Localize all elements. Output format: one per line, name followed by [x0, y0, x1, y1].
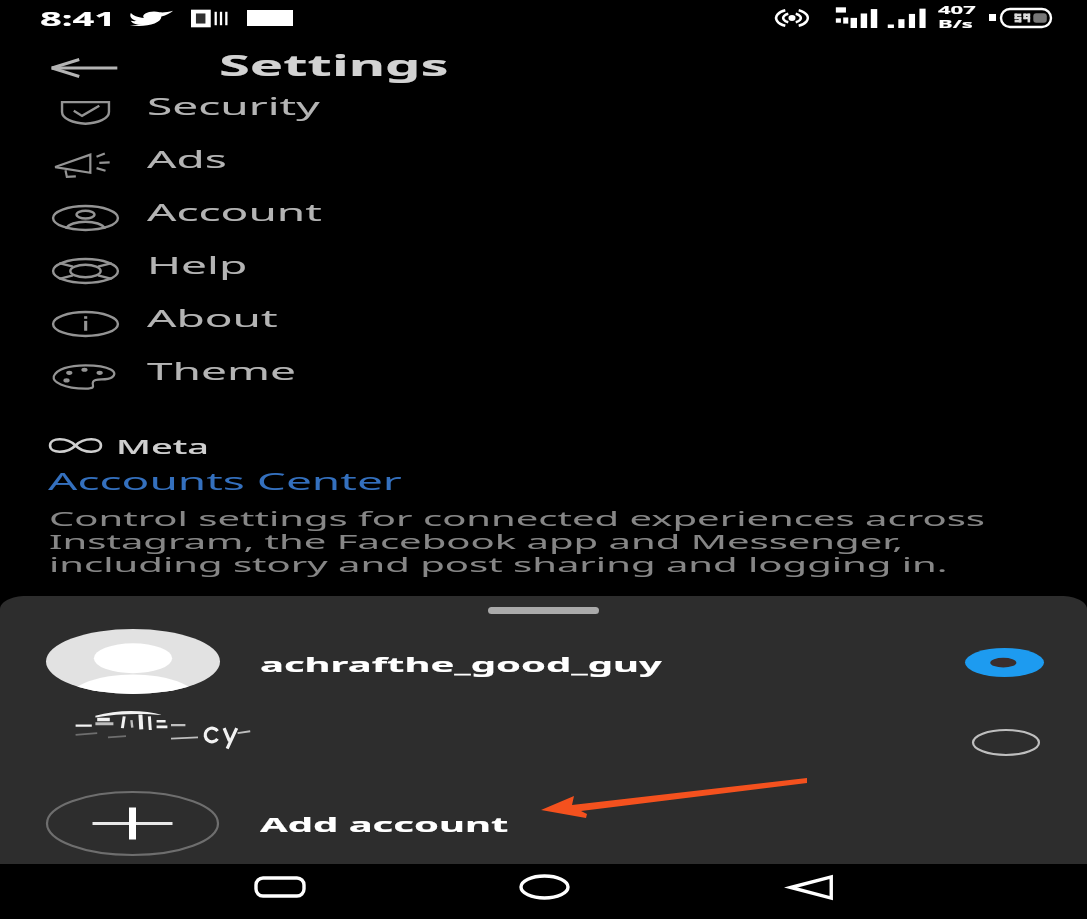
button[interactable] — [0, 704, 1087, 786]
button[interactable]: Ads — [0, 133, 1087, 186]
staticText: Security — [147, 90, 321, 121]
button[interactable]: Security — [0, 80, 1087, 133]
button[interactable]: About — [0, 292, 1087, 345]
staticText: Meta — [116, 434, 210, 460]
button[interactable]: Home — [499, 867, 589, 907]
button[interactable]: Help — [0, 239, 1087, 292]
staticText: Ads — [147, 143, 227, 174]
staticText: achrafthe_good_guy — [260, 651, 662, 678]
button[interactable]: achrafthe_good_guy — [0, 622, 1087, 704]
button[interactable]: Theme — [0, 345, 1087, 398]
staticText: Accounts Center — [48, 465, 402, 493]
staticText: 8:41 — [40, 6, 116, 32]
staticText: About — [147, 302, 279, 333]
button[interactable]: Add account — [0, 782, 1087, 862]
staticText: Theme — [147, 355, 297, 386]
staticText: B/s — [938, 16, 974, 31]
button[interactable]: Account — [0, 186, 1087, 239]
button[interactable]: Accounts Center — [48, 465, 410, 493]
staticText: 407 — [938, 2, 976, 17]
staticText: Settings — [219, 46, 449, 84]
button[interactable]: Back — [766, 867, 856, 907]
staticText: Help — [147, 249, 249, 280]
button[interactable]: Recent apps — [235, 867, 325, 907]
button[interactable]: Back — [40, 46, 128, 90]
staticText: Control settings for connected experienc… — [49, 505, 985, 578]
staticText: Add account — [260, 811, 510, 838]
staticText: Account — [147, 196, 323, 227]
